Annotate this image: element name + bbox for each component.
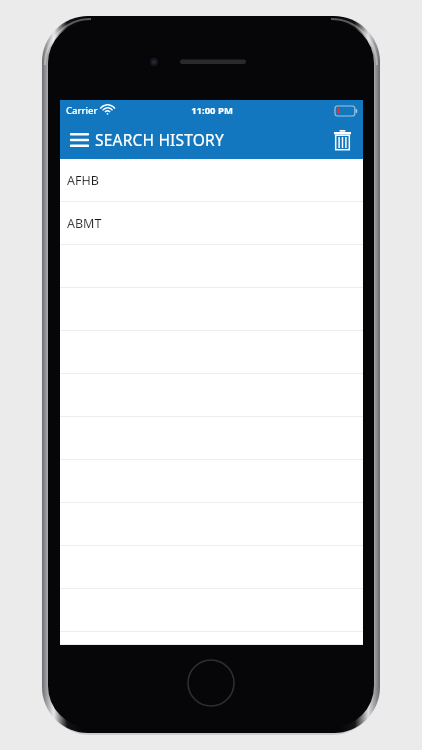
button[interactable]: AFHB: [60, 159, 363, 202]
staticText: 11:00 PM: [191, 104, 233, 117]
staticText: ABMT: [67, 215, 102, 232]
button[interactable]: Menu: [64, 125, 94, 155]
staticText: SEARCH HISTORY: [95, 129, 224, 150]
staticText: Carrier: [66, 104, 98, 117]
button[interactable]: ABMT: [60, 202, 363, 245]
button[interactable]: Delete history: [326, 124, 358, 156]
button[interactable]: [60, 632, 363, 645]
staticText: AFHB: [67, 172, 99, 189]
